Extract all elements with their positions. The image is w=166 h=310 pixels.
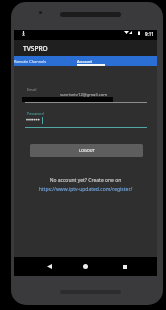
button[interactable]: LOGOUT [30,144,143,157]
button[interactable]: https://www.iptv-updated.com/register/ [14,186,157,193]
staticText: ••••••• [26,116,40,123]
staticText: Password [27,111,44,116]
staticText: sunrisetv12@gmail.com [60,92,108,98]
button[interactable]: TVSPRO [14,40,157,56]
staticText: No account yet? Create one on [14,177,157,184]
button[interactable]: Back [36,257,63,276]
staticText: 9:11 [145,31,154,37]
staticText: Account [77,59,92,64]
staticText: Remote Channels [14,59,47,64]
button[interactable]: Remote Channels [14,56,77,66]
staticText: TVSPRO [23,44,48,53]
button[interactable]: Account [77,56,105,66]
button[interactable]: Recent apps [111,257,138,276]
staticText: Email [27,87,37,92]
staticText: LOGOUT [79,148,95,153]
button[interactable]: Home [72,257,99,276]
